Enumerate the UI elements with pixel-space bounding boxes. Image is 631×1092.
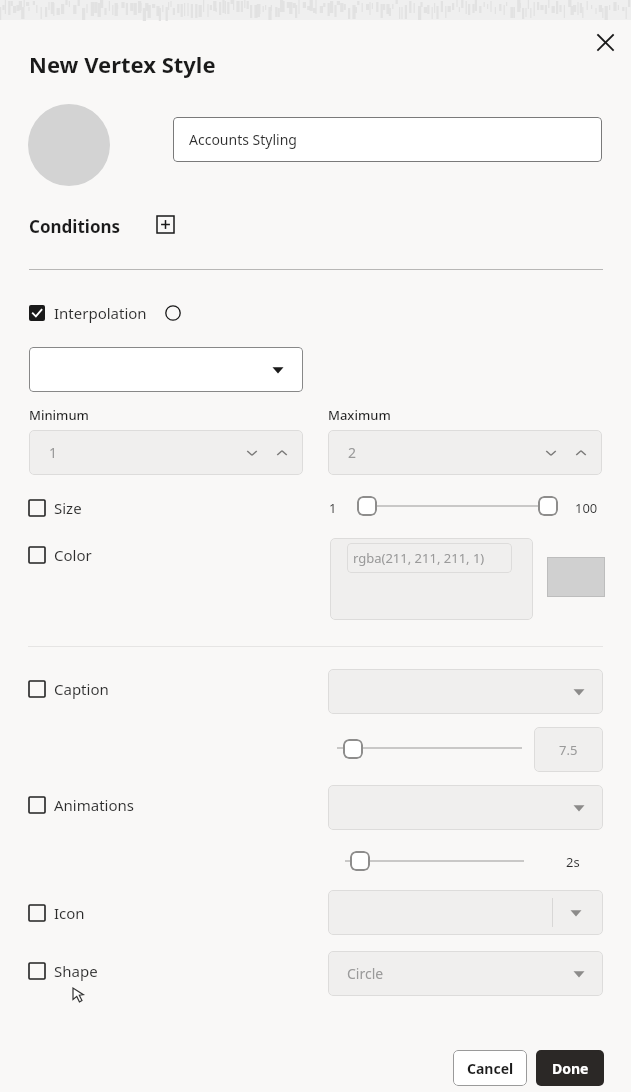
button[interactable]: Slider handle — [538, 496, 558, 516]
staticText: Done — [552, 1059, 589, 1078]
button[interactable]: Unchecked — [29, 545, 92, 565]
button[interactable]: Color swatch — [547, 557, 605, 597]
button[interactable]: Color value — [330, 538, 533, 620]
staticText: 7.5 — [559, 741, 578, 759]
staticText: Circle — [347, 964, 384, 983]
staticText: Animations — [54, 795, 134, 815]
button[interactable]: Accounts Styling — [173, 117, 602, 162]
button[interactable]: Unchecked — [29, 797, 45, 813]
button[interactable]: Unchecked — [29, 500, 45, 516]
staticText: Conditions — [29, 215, 121, 238]
button[interactable]: Caption size — [534, 727, 603, 772]
button[interactable]: Done — [536, 1050, 604, 1086]
staticText: Accounts Styling — [189, 130, 297, 149]
button[interactable]: Circle — [328, 951, 603, 996]
button[interactable]: Unchecked — [29, 547, 45, 563]
staticText: Caption — [54, 679, 109, 699]
staticText: rgba(211, 211, 211, 1) — [353, 549, 485, 567]
button[interactable]: Checked — [29, 303, 147, 323]
button[interactable]: Close — [589, 26, 621, 58]
button[interactable]: Select option — [328, 669, 603, 714]
staticText: Cancel — [467, 1059, 514, 1078]
button[interactable]: Unchecked — [29, 795, 134, 815]
button[interactable]: Unchecked — [29, 498, 82, 518]
button[interactable]: Help — [165, 305, 181, 321]
staticText: 2 — [348, 443, 357, 462]
staticText: 1 — [49, 443, 58, 462]
button[interactable]: Unchecked — [29, 963, 45, 979]
button[interactable]: Avatar — [28, 104, 110, 186]
button[interactable]: Select option — [328, 785, 603, 830]
button[interactable]: 2 — [328, 430, 602, 475]
staticText: New Vertex Style — [29, 49, 216, 79]
staticText: Size — [54, 498, 82, 518]
staticText: Color — [54, 545, 92, 565]
staticText: Maximum — [328, 406, 391, 424]
button[interactable]: Unchecked — [29, 905, 45, 921]
button[interactable]: Cancel — [453, 1050, 527, 1086]
staticText: 1 — [329, 499, 337, 517]
staticText: Minimum — [29, 406, 89, 424]
staticText: Shape — [54, 961, 98, 981]
button[interactable]: Slider handle — [357, 496, 377, 516]
button[interactable]: Unchecked — [29, 961, 98, 981]
staticText: 2s — [566, 853, 580, 871]
button[interactable]: Slider handle — [350, 851, 370, 871]
button[interactable]: 1 — [29, 430, 303, 475]
button[interactable]: Icon — [328, 890, 603, 935]
button[interactable]: Unchecked — [29, 681, 45, 697]
button[interactable]: Slider handle — [343, 739, 363, 759]
staticText: Interpolation — [54, 303, 147, 323]
button[interactable]: Checked — [29, 305, 45, 321]
staticText: 100 — [575, 499, 598, 517]
button[interactable]: Unchecked — [29, 679, 109, 699]
button[interactable]: Add condition — [157, 216, 174, 233]
button[interactable]: Interpolation type — [29, 347, 303, 392]
button[interactable]: Unchecked — [29, 903, 85, 923]
staticText: Icon — [54, 903, 85, 923]
